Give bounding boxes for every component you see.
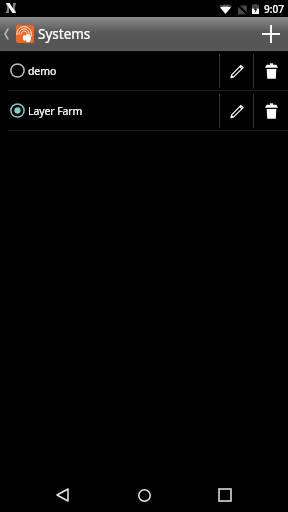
button[interactable]: Delete [254, 51, 288, 90]
staticText: 9:07 [264, 2, 284, 16]
button[interactable]: Recents [203, 478, 247, 512]
button[interactable]: Add [252, 17, 288, 51]
button[interactable]: Layer Farm [0, 91, 219, 130]
button[interactable]: Edit [220, 51, 253, 90]
button[interactable]: Back [0, 17, 15, 51]
staticText: demo [28, 64, 57, 78]
button[interactable]: Edit [220, 91, 253, 130]
button[interactable]: Delete [254, 91, 288, 130]
button[interactable]: demo [0, 51, 219, 90]
staticText: Layer Farm [28, 104, 83, 118]
button[interactable]: Back [40, 478, 84, 512]
staticText: Systems [38, 25, 91, 43]
button[interactable]: Home [122, 478, 166, 512]
